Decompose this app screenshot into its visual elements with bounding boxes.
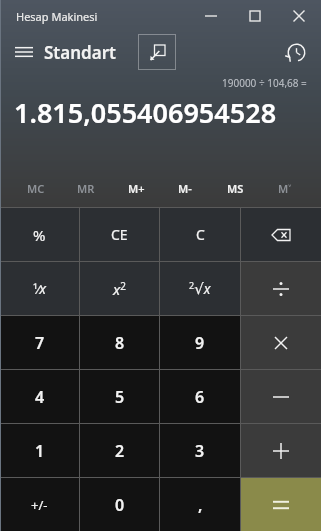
button[interactable]: % [0, 208, 79, 261]
button[interactable]: 2 [80, 424, 159, 477]
button[interactable]: Divide [241, 262, 321, 315]
button[interactable]: 8 [80, 316, 159, 369]
staticText: 1.815,055406954528 [14, 94, 277, 131]
staticText: 0 [115, 494, 125, 516]
button[interactable]: Subtract [241, 370, 321, 423]
staticText: M˅ [278, 181, 292, 196]
staticText: 190000 ÷ 104,68 = [222, 76, 307, 90]
button[interactable]: Multiply [241, 316, 321, 369]
staticText: MR [77, 181, 95, 196]
staticText: 7 [35, 332, 45, 354]
staticText: 3 [195, 440, 205, 462]
staticText: ¹⁄x [33, 279, 47, 298]
button[interactable]: Equals [241, 478, 321, 531]
staticText: x2 [113, 279, 126, 299]
button[interactable]: M- [165, 175, 205, 201]
staticText: Standart [44, 41, 116, 64]
button[interactable]: Close [277, 0, 321, 32]
staticText: 9 [195, 332, 205, 354]
staticText: CE [111, 225, 128, 244]
button[interactable]: 4 [0, 370, 79, 423]
staticText: , [198, 494, 203, 516]
staticText: MC [27, 181, 45, 196]
staticText: 4 [35, 386, 45, 408]
button[interactable]: x2 [80, 262, 159, 315]
staticText: C [196, 225, 205, 244]
staticText: % [33, 225, 46, 245]
button[interactable]: History [279, 35, 313, 69]
button[interactable]: Maximize [233, 0, 277, 32]
button[interactable]: ¹⁄x [0, 262, 79, 315]
button[interactable]: 6 [160, 370, 240, 423]
button[interactable]: 5 [80, 370, 159, 423]
button[interactable]: C [160, 208, 240, 261]
button[interactable]: 9 [160, 316, 240, 369]
staticText: M+ [128, 181, 145, 196]
staticText: +/- [31, 496, 48, 514]
button[interactable]: 2√x [160, 262, 240, 315]
button[interactable]: MC [16, 175, 56, 201]
button[interactable]: Menu [8, 36, 40, 68]
staticText: M- [178, 181, 192, 196]
staticText: Hesap Makinesi [16, 9, 98, 24]
staticText: 8 [115, 332, 125, 354]
staticText: 2√x [189, 279, 211, 298]
button[interactable]: 7 [0, 316, 79, 369]
button[interactable]: 3 [160, 424, 240, 477]
staticText: 2 [115, 440, 125, 462]
button[interactable]: CE [80, 208, 159, 261]
button[interactable]: Backspace [241, 208, 321, 261]
staticText: 6 [195, 386, 205, 408]
button[interactable]: 1 [0, 424, 79, 477]
button[interactable]: M˅ [265, 175, 305, 201]
staticText: 5 [115, 386, 125, 408]
button[interactable]: 0 [80, 478, 159, 531]
button[interactable]: MR [66, 175, 106, 201]
button[interactable]: Keep on top [138, 34, 176, 70]
button[interactable]: Minimize [189, 0, 233, 32]
staticText: 1 [35, 440, 45, 462]
staticText: MS [227, 181, 244, 196]
button[interactable]: Add [241, 424, 321, 477]
button[interactable]: , [160, 478, 240, 531]
button[interactable]: M+ [116, 175, 156, 201]
button[interactable]: +/- [0, 478, 79, 531]
button[interactable]: MS [215, 175, 255, 201]
